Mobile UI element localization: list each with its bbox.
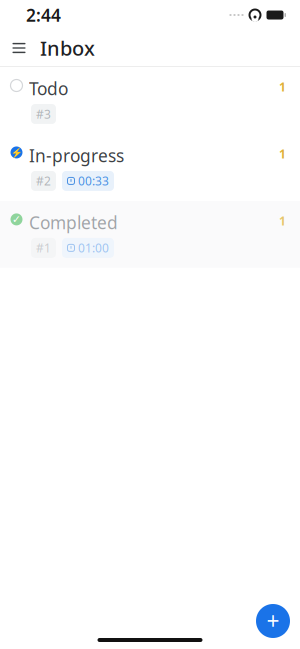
- button[interactable]: Add task: [251, 599, 295, 643]
- button[interactable]: ⚡: [0, 134, 300, 201]
- staticText: Inbox: [40, 35, 95, 61]
- staticText: #1: [36, 240, 51, 256]
- staticText: +: [266, 606, 279, 636]
- staticText: #2: [36, 173, 51, 189]
- button[interactable]: ✓: [0, 201, 300, 268]
- staticText: 00:33: [78, 173, 109, 189]
- staticText: 1: [279, 146, 286, 162]
- staticText: ✓: [12, 213, 21, 225]
- staticText: 01:00: [78, 240, 109, 256]
- staticText: Completed: [29, 211, 118, 234]
- button[interactable]: Todo: [0, 67, 300, 134]
- staticText: #3: [36, 106, 51, 122]
- staticText: ⚡: [10, 147, 22, 158]
- staticText: In-progress: [29, 144, 124, 167]
- staticText: 1: [279, 213, 286, 229]
- staticText: 1: [279, 79, 286, 95]
- button[interactable]: Menu: [4, 30, 34, 66]
- staticText: Todo: [29, 77, 68, 100]
- staticText: 2:44: [26, 3, 61, 26]
